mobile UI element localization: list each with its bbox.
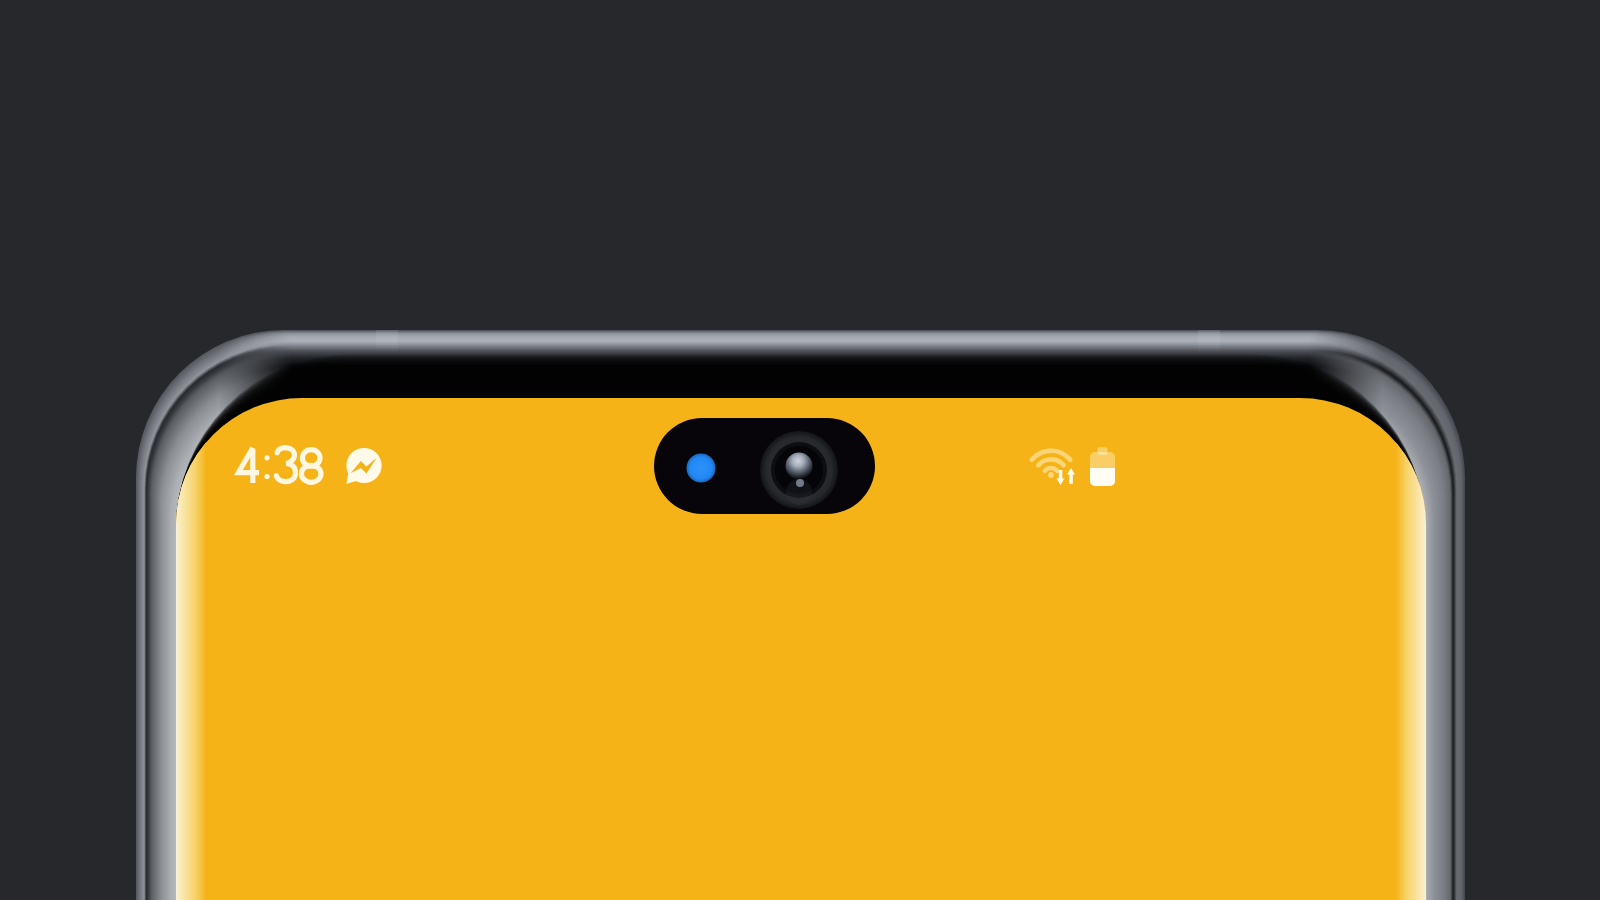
button[interactable]: Battery: [1086, 444, 1120, 492]
button[interactable]: Wi-Fi: [1026, 444, 1082, 492]
button[interactable]: Clock, 4:38: [232, 440, 332, 492]
button[interactable]: Messenger notification: [344, 444, 388, 488]
button[interactable]: Front camera: [650, 414, 880, 518]
